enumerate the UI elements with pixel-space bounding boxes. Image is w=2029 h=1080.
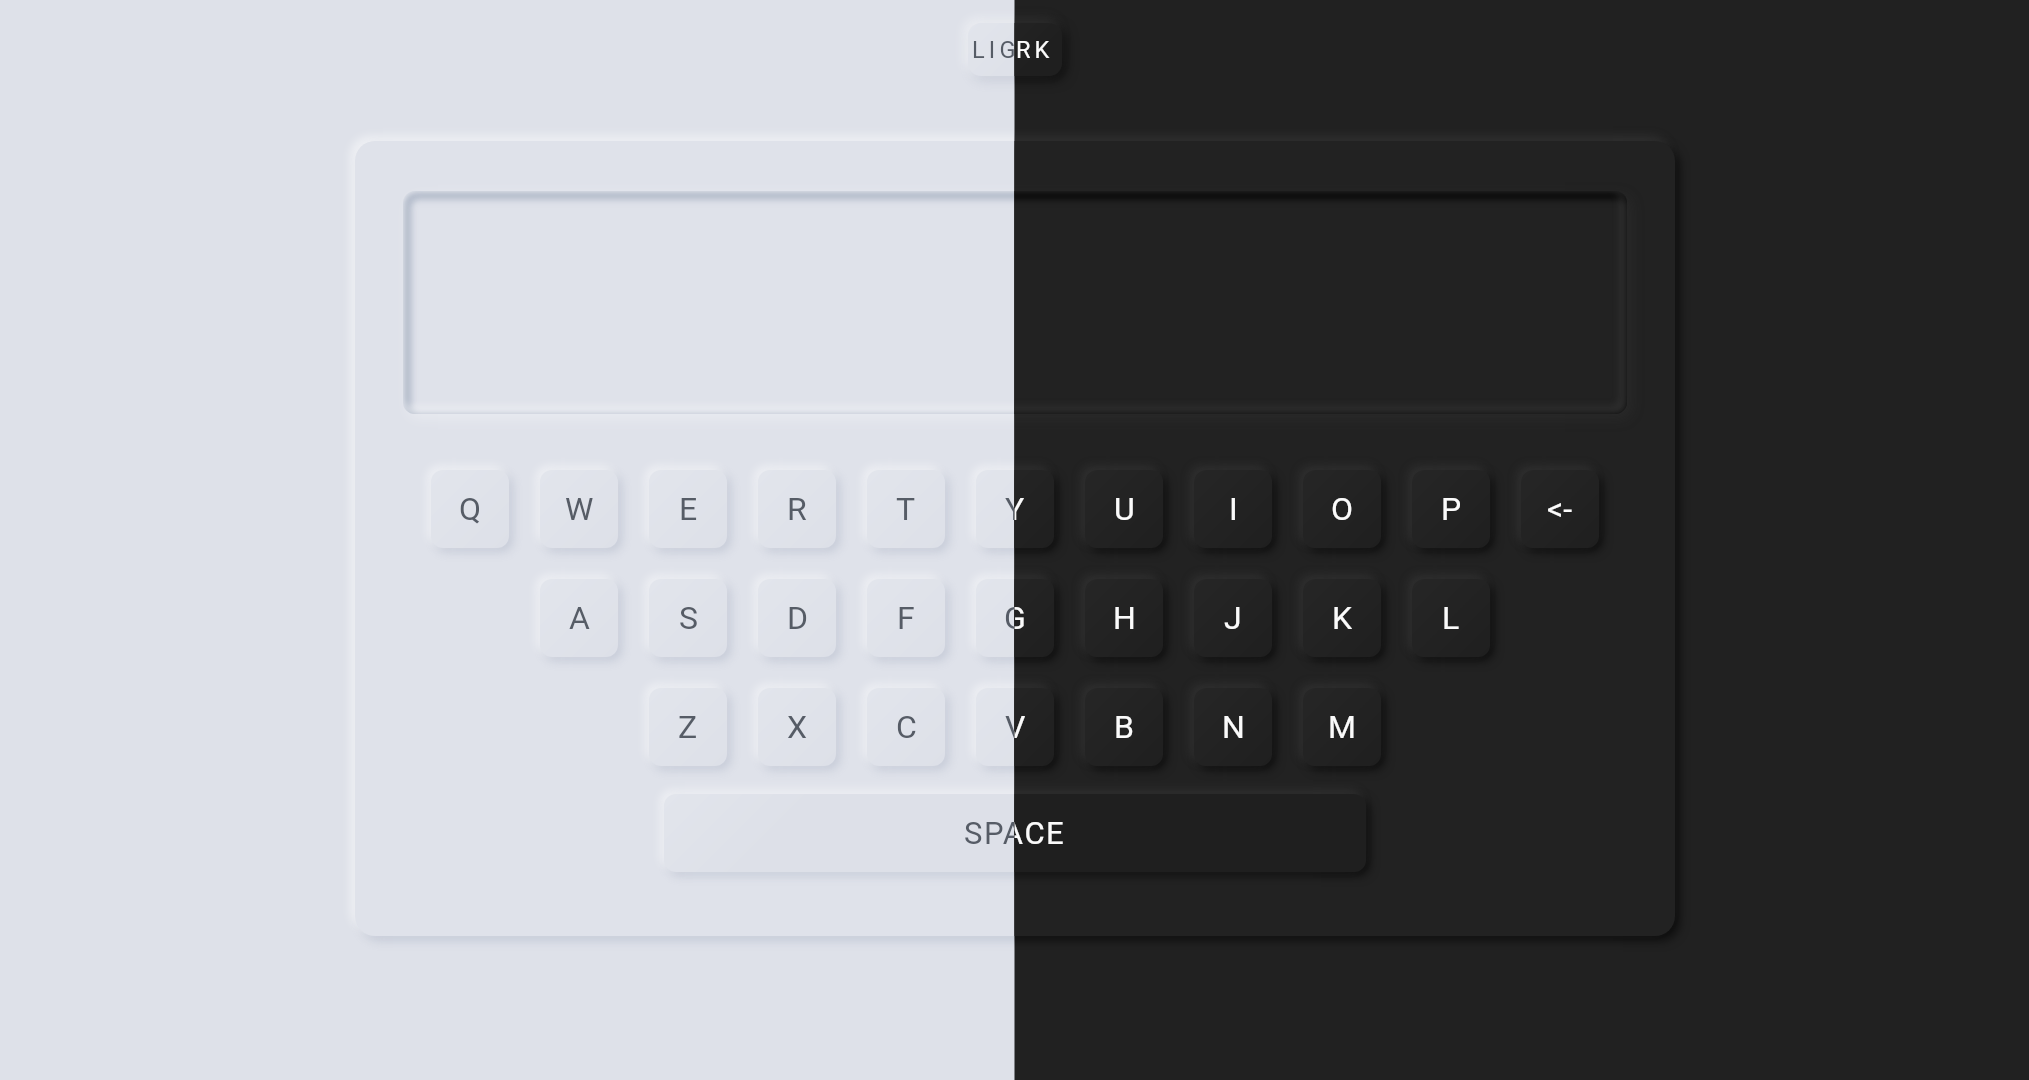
button[interactable]: P xyxy=(1412,470,1490,548)
button[interactable]: O xyxy=(1303,470,1381,548)
button[interactable]: G xyxy=(976,579,1054,657)
button[interactable]: Z xyxy=(649,688,727,766)
staticText: C xyxy=(896,708,917,746)
staticText: M xyxy=(1328,708,1356,746)
button[interactable]: Text input field xyxy=(403,191,1627,414)
button[interactable]: D xyxy=(758,579,836,657)
staticText: X xyxy=(787,708,808,746)
staticText: I xyxy=(1229,490,1238,528)
staticText: P xyxy=(1441,490,1462,528)
button[interactable]: W xyxy=(540,470,618,548)
staticText: <- xyxy=(1547,490,1573,528)
button[interactable]: B xyxy=(1085,688,1163,766)
staticText: U xyxy=(1114,490,1135,528)
staticText: O xyxy=(1331,490,1354,528)
staticText: DARK xyxy=(977,36,1054,64)
button[interactable]: N xyxy=(1194,688,1272,766)
staticText: T xyxy=(896,490,916,528)
button[interactable]: T xyxy=(867,470,945,548)
button[interactable]: DARK xyxy=(968,23,1062,76)
button[interactable]: R xyxy=(758,470,836,548)
button[interactable]: H xyxy=(1085,579,1163,657)
staticText: H xyxy=(1113,599,1136,637)
button[interactable]: L xyxy=(1412,579,1490,657)
staticText: F xyxy=(897,599,915,637)
button[interactable]: U xyxy=(1085,470,1163,548)
staticText: Z xyxy=(678,708,698,746)
button[interactable]: S xyxy=(649,579,727,657)
staticText: U xyxy=(1114,490,1135,528)
staticText: R xyxy=(787,490,807,528)
button[interactable]: Y xyxy=(976,470,1054,548)
staticText: L xyxy=(1442,599,1460,637)
staticText: X xyxy=(787,708,808,746)
staticText: P xyxy=(1441,490,1462,528)
button[interactable]: E xyxy=(649,470,727,548)
button[interactable]: Z xyxy=(649,688,727,766)
button[interactable]: D xyxy=(758,579,836,657)
button[interactable]: J xyxy=(1194,579,1272,657)
button[interactable]: L xyxy=(1412,579,1490,657)
staticText: N xyxy=(1222,708,1245,746)
button[interactable]: B xyxy=(1085,688,1163,766)
button[interactable]: SPACE xyxy=(664,794,1366,872)
button[interactable]: F xyxy=(867,579,945,657)
button[interactable]: X xyxy=(758,688,836,766)
button[interactable]: K xyxy=(1303,579,1381,657)
staticText: M xyxy=(1328,708,1356,746)
staticText: V xyxy=(1005,708,1026,746)
button[interactable]: K xyxy=(1303,579,1381,657)
button[interactable]: Y xyxy=(976,470,1054,548)
staticText: C xyxy=(896,708,917,746)
button[interactable]: J xyxy=(1194,579,1272,657)
button[interactable]: S xyxy=(649,579,727,657)
button[interactable]: H xyxy=(1085,579,1163,657)
button[interactable]: A xyxy=(540,579,618,657)
button[interactable]: N xyxy=(1194,688,1272,766)
staticText: A xyxy=(569,599,590,637)
button[interactable]: E xyxy=(649,470,727,548)
button[interactable]: R xyxy=(758,470,836,548)
button[interactable]: V xyxy=(976,688,1054,766)
button[interactable]: O xyxy=(1303,470,1381,548)
staticText: B xyxy=(1114,708,1134,746)
staticText: Z xyxy=(678,708,698,746)
button[interactable]: SPACE xyxy=(664,794,1366,872)
staticText: R xyxy=(787,490,807,528)
staticText: J xyxy=(1224,599,1242,637)
button[interactable]: I xyxy=(1194,470,1272,548)
staticText: S xyxy=(679,599,698,637)
button[interactable]: U xyxy=(1085,470,1163,548)
staticText: S xyxy=(679,599,698,637)
staticText: T xyxy=(896,490,916,528)
button[interactable]: Backspace xyxy=(1521,470,1599,548)
button[interactable]: G xyxy=(976,579,1054,657)
button[interactable]: F xyxy=(867,579,945,657)
staticText: W xyxy=(565,490,594,528)
staticText: I xyxy=(1229,490,1238,528)
staticText: F xyxy=(897,599,915,637)
button[interactable]: Text input field xyxy=(403,191,1627,414)
button[interactable]: C xyxy=(867,688,945,766)
staticText: SPACE xyxy=(964,815,1066,851)
button[interactable]: A xyxy=(540,579,618,657)
button[interactable]: M xyxy=(1303,688,1381,766)
staticText: Y xyxy=(1005,490,1025,528)
button[interactable]: W xyxy=(540,470,618,548)
button[interactable]: M xyxy=(1303,688,1381,766)
button[interactable]: LIGHT xyxy=(968,23,1062,76)
staticText: D xyxy=(787,599,808,637)
staticText: Y xyxy=(1005,490,1025,528)
staticText: J xyxy=(1224,599,1242,637)
staticText: LIGHT xyxy=(972,36,1059,64)
button[interactable]: C xyxy=(867,688,945,766)
button[interactable]: V xyxy=(976,688,1054,766)
button[interactable]: Backspace xyxy=(1521,470,1599,548)
button[interactable]: I xyxy=(1194,470,1272,548)
button[interactable]: Q xyxy=(431,470,509,548)
button[interactable]: T xyxy=(867,470,945,548)
staticText: SPACE xyxy=(964,815,1066,851)
button[interactable]: X xyxy=(758,688,836,766)
button[interactable]: P xyxy=(1412,470,1490,548)
button[interactable]: Q xyxy=(431,470,509,548)
